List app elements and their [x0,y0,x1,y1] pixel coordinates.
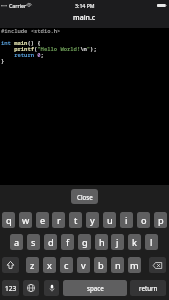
staticText: c [64,259,69,272]
staticText: q [6,214,12,227]
button[interactable]: l [145,234,158,250]
staticText: t [74,214,78,227]
button[interactable]: f [61,234,74,250]
staticText: i [125,214,128,227]
button[interactable]: u [103,212,116,228]
button[interactable]: Backspace [149,257,166,273]
staticText: x [47,259,52,272]
button[interactable]: h [95,234,108,250]
staticText: n [115,259,121,272]
button[interactable]: o [137,212,150,228]
staticText: u [107,214,113,227]
button[interactable]: k [128,234,141,250]
button[interactable]: Shift [2,257,19,273]
button[interactable]: Close [71,189,98,204]
button[interactable]: w [19,212,32,228]
button[interactable]: j [111,234,124,250]
staticText: h [99,236,105,249]
button[interactable]: g [78,234,91,250]
button[interactable]: i [120,212,133,228]
staticText: b [98,259,104,272]
button[interactable]: r [52,212,65,228]
staticText: k [132,236,137,249]
staticText: f [66,236,70,249]
staticText: w [22,214,30,227]
button[interactable]: t [69,212,82,228]
button[interactable]: x [43,257,56,273]
staticText: r [57,214,61,227]
button[interactable]: p [154,212,167,228]
button[interactable]: e [36,212,49,228]
button[interactable]: v [77,257,90,273]
staticText: l [150,236,153,249]
button[interactable]: s [27,234,40,250]
button[interactable]: y [86,212,99,228]
staticText: main.c [73,13,96,23]
staticText: a [14,236,20,249]
button[interactable]: 123 [2,280,19,296]
staticText: #include <stdio.h> int main() { printf("… [1,28,97,64]
button[interactable]: m [128,257,141,273]
button[interactable]: return [130,280,166,296]
button[interactable]: Switch keyboard [23,280,39,296]
staticText: 123 [5,284,17,293]
button[interactable]: b [94,257,107,273]
staticText: s [31,236,36,249]
button[interactable]: z [26,257,39,273]
staticText: z [30,259,35,272]
staticText: e [40,214,46,227]
staticText: Close [77,193,93,201]
staticText: p [158,214,164,227]
staticText: 3:14 PM [75,2,95,9]
staticText: j [116,236,119,249]
button[interactable]: space [63,280,127,296]
staticText: v [81,259,86,272]
button[interactable]: q [2,212,15,228]
staticText: g [82,236,88,249]
button[interactable]: n [111,257,124,273]
staticText: Carrier [9,2,27,9]
staticText: space [87,284,104,292]
button[interactable]: d [44,234,57,250]
button[interactable]: Dictate [44,280,59,296]
staticText: return [139,284,158,292]
staticText: y [90,214,95,227]
button[interactable]: a [10,234,23,250]
staticText: m [130,259,139,272]
staticText: o [141,214,147,227]
staticText: d [48,236,54,249]
button[interactable]: c [60,257,73,273]
